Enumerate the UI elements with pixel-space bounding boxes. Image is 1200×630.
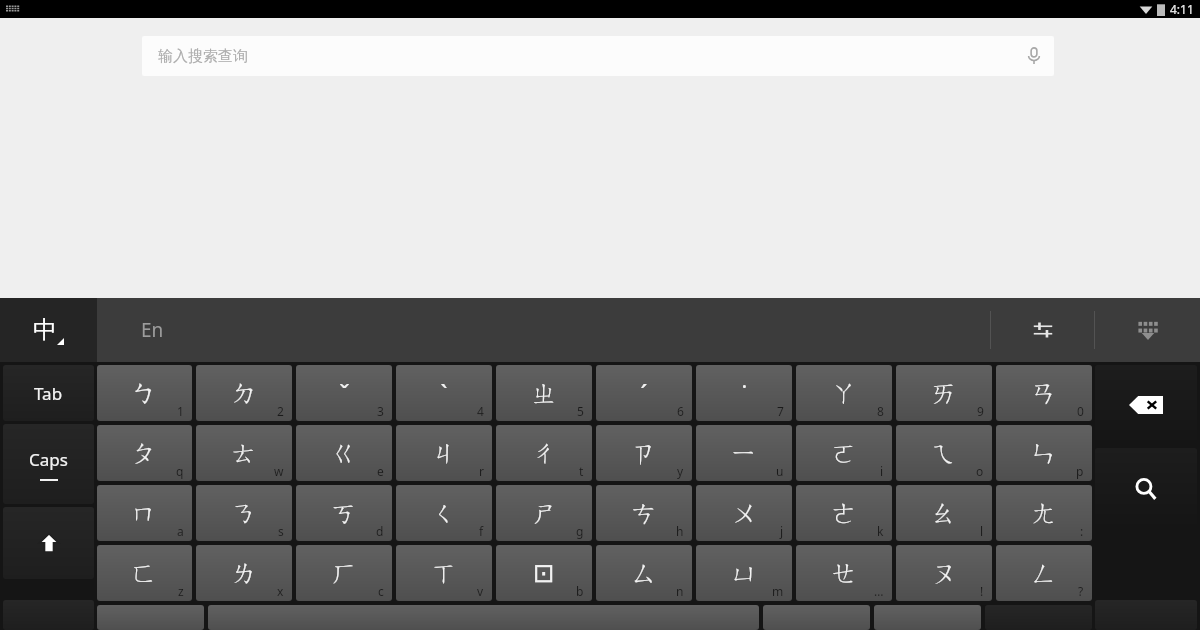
button[interactable]: ㄆ: [97, 425, 192, 481]
staticText: a: [177, 523, 184, 539]
staticText: f: [479, 523, 484, 539]
button[interactable]: Tab: [3, 365, 94, 421]
button[interactable]: Backspace: [1095, 365, 1197, 445]
button[interactable]: ㄒ: [396, 545, 492, 601]
staticText: t: [579, 463, 584, 479]
staticText: ㄉ: [231, 377, 258, 410]
button[interactable]: ⊡: [496, 545, 592, 601]
button[interactable]: ㄘ: [596, 485, 692, 541]
button[interactable]: Period: [763, 605, 870, 630]
staticText: r: [479, 463, 484, 479]
button[interactable]: ㄋ: [196, 485, 292, 541]
button[interactable]: ㄔ: [496, 425, 592, 481]
staticText: ㄅ: [131, 377, 158, 410]
staticText: m: [772, 583, 784, 599]
staticText: ㄕ: [531, 497, 558, 530]
button[interactable]: ㄚ: [796, 365, 892, 421]
staticText: ㄆ: [131, 437, 158, 470]
button[interactable]: ㄉ: [196, 365, 292, 421]
button[interactable]: ㄑ: [396, 485, 492, 541]
button[interactable]: ㄠ: [896, 485, 992, 541]
button[interactable]: ㄍ: [296, 425, 392, 481]
staticText: j: [780, 523, 784, 539]
staticText: ㄢ: [1031, 377, 1058, 410]
button[interactable]: ˇ: [296, 365, 392, 421]
button[interactable]: ㄧ: [696, 425, 792, 481]
button[interactable]: ㄊ: [196, 425, 292, 481]
button[interactable]: ㄡ: [896, 545, 992, 601]
button[interactable]: Comma: [97, 605, 204, 630]
button[interactable]: Space: [208, 605, 759, 630]
staticText: ㄋ: [231, 497, 258, 530]
staticText: ˋ: [440, 376, 448, 411]
button[interactable]: ㄐ: [396, 425, 492, 481]
button[interactable]: ㄥ: [996, 545, 1092, 601]
button[interactable]: ˙: [696, 365, 792, 421]
button[interactable]: Input settings: [991, 298, 1094, 362]
button[interactable]: Search: [1095, 448, 1197, 529]
staticText: 0: [1077, 403, 1084, 419]
button[interactable]: Hide keyboard: [1095, 298, 1200, 362]
button[interactable]: ㄗ: [596, 425, 692, 481]
staticText: c: [378, 583, 384, 599]
button[interactable]: ㄕ: [496, 485, 592, 541]
staticText: h: [676, 523, 684, 539]
staticText: 6: [677, 403, 684, 419]
staticText: ㄊ: [231, 437, 258, 470]
staticText: ㄨ: [731, 497, 758, 530]
button[interactable]: ㄎ: [296, 485, 392, 541]
staticText: ㄣ: [1031, 437, 1058, 470]
staticText: Tab: [34, 382, 63, 405]
button[interactable]: 输入搜索查询: [142, 36, 1054, 76]
button[interactable]: ㄝ: [796, 545, 892, 601]
staticText: 1: [177, 403, 184, 419]
staticText: ㄥ: [1031, 557, 1058, 590]
staticText: Caps: [29, 448, 68, 471]
staticText: ㄟ: [931, 437, 958, 470]
button[interactable]: En: [97, 298, 990, 362]
staticText: 输入搜索查询: [158, 47, 248, 66]
button[interactable]: Arrow: [874, 605, 981, 630]
button[interactable]: ㄜ: [796, 485, 892, 541]
button[interactable]: ㄅ: [97, 365, 192, 421]
button[interactable]: ㄞ: [896, 365, 992, 421]
button[interactable]: ㄛ: [796, 425, 892, 481]
button[interactable]: ㄢ: [996, 365, 1092, 421]
staticText: z: [178, 583, 184, 599]
button[interactable]: ㄈ: [97, 545, 192, 601]
staticText: ㄗ: [631, 437, 658, 470]
button[interactable]: Voice search: [1014, 36, 1054, 76]
staticText: e: [377, 463, 384, 479]
button[interactable]: ˊ: [596, 365, 692, 421]
staticText: 7: [777, 403, 784, 419]
button[interactable]: ˋ: [396, 365, 492, 421]
button[interactable]: Caps: [3, 424, 94, 504]
staticText: s: [278, 523, 284, 539]
button[interactable]: ㄤ: [996, 485, 1092, 541]
button[interactable]: ㄙ: [596, 545, 692, 601]
button[interactable]: ㄌ: [196, 545, 292, 601]
staticText: ㄡ: [931, 557, 958, 590]
staticText: ㄚ: [831, 377, 858, 410]
button[interactable]: ㄟ: [896, 425, 992, 481]
staticText: ㄇ: [131, 497, 158, 530]
staticText: ㄐ: [431, 437, 458, 470]
staticText: g: [576, 523, 584, 539]
button[interactable]: ㄇ: [97, 485, 192, 541]
button[interactable]: ㄩ: [696, 545, 792, 601]
button[interactable]: ㄨ: [696, 485, 792, 541]
staticText: l: [980, 523, 984, 539]
staticText: ㄍ: [331, 437, 358, 470]
staticText: ㄞ: [931, 377, 958, 410]
button[interactable]: ㄓ: [496, 365, 592, 421]
staticText: p: [1076, 463, 1084, 479]
staticText: ㄈ: [131, 557, 158, 590]
button[interactable]: Switch language: [0, 298, 97, 362]
button[interactable]: ㄏ: [296, 545, 392, 601]
button[interactable]: ㄣ: [996, 425, 1092, 481]
staticText: :: [1080, 523, 1084, 539]
button[interactable]: Shift: [3, 507, 94, 579]
